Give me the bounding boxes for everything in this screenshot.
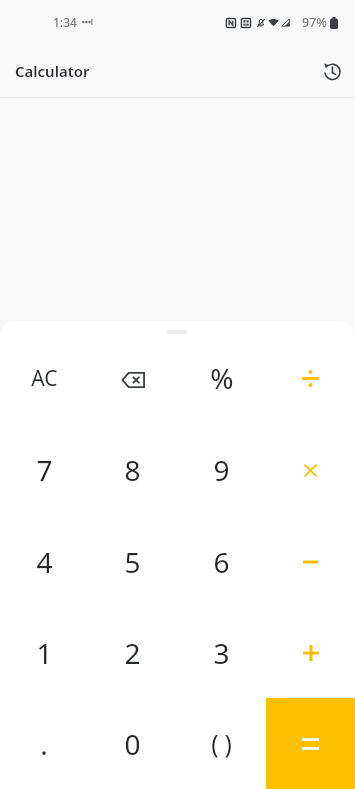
staticText: 9 — [213, 451, 230, 489]
staticText: 4 — [36, 543, 53, 581]
staticText: 5 — [124, 543, 141, 581]
staticText: Calculator — [15, 61, 90, 81]
staticText: 97% — [302, 14, 327, 31]
button[interactable]: 5 — [88, 516, 177, 607]
staticText: 0 — [124, 725, 141, 763]
staticText: () — [211, 727, 238, 760]
staticText: 7 — [36, 451, 53, 489]
staticText: 6 — [213, 543, 230, 581]
button[interactable]: () — [177, 698, 266, 789]
staticText: 1 — [36, 634, 53, 672]
button[interactable]: 1 — [0, 607, 88, 698]
button[interactable]: Backspace — [88, 332, 177, 424]
button[interactable]: 6 — [177, 516, 266, 607]
staticText: % — [210, 359, 234, 397]
button[interactable]: 9 — [177, 424, 266, 516]
staticText: AC — [31, 364, 58, 393]
button[interactable]: Equals — [266, 698, 355, 789]
staticText: 8 — [124, 451, 141, 489]
button[interactable]: Minus — [266, 516, 355, 607]
staticText: 1:34 — [53, 14, 77, 30]
button[interactable]: Multiply — [266, 424, 355, 516]
button[interactable]: History — [311, 51, 351, 91]
button[interactable]: 7 — [0, 424, 88, 516]
button[interactable]: 2 — [88, 607, 177, 698]
button[interactable]: 8 — [88, 424, 177, 516]
button[interactable]: AC — [0, 332, 88, 424]
button[interactable]: 0 — [88, 698, 177, 789]
button[interactable]: 3 — [177, 607, 266, 698]
button[interactable]: 4 — [0, 516, 88, 607]
staticText: . — [40, 725, 48, 763]
button[interactable]: Plus — [266, 607, 355, 698]
button[interactable]: . — [0, 698, 88, 789]
staticText: 3 — [213, 634, 230, 672]
button[interactable]: Divide — [266, 332, 355, 424]
staticText: 2 — [124, 634, 141, 672]
button[interactable]: % — [177, 332, 266, 424]
